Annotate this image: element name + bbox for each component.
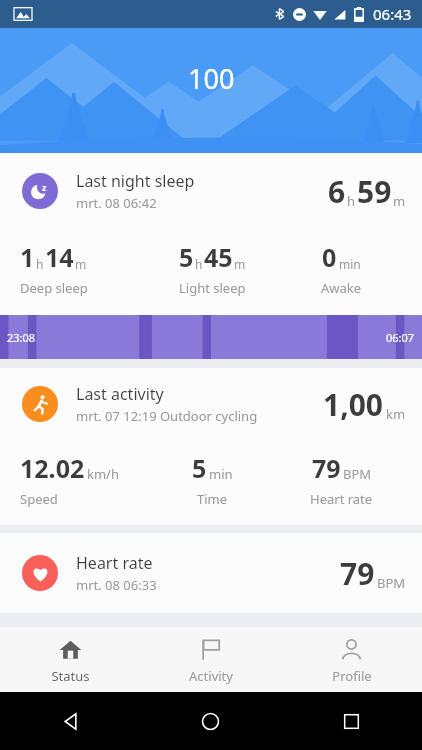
button[interactable]: Activity [140, 627, 281, 692]
staticText: Status [51, 667, 90, 685]
other: Activity [199, 638, 222, 661]
staticText: h [347, 192, 356, 210]
staticText: 1,00 [323, 384, 384, 425]
staticText: Heart rate [310, 490, 373, 508]
staticText: h [36, 256, 44, 272]
staticText: Light sleep [179, 279, 246, 297]
button[interactable]: Status [0, 627, 140, 692]
staticText: 6 [328, 171, 346, 212]
staticText: z [42, 181, 47, 193]
staticText: 23:08 [7, 330, 36, 345]
button[interactable]: Recents [281, 692, 422, 750]
staticText: mrt. 07 12:19 Outdoor cycling [76, 407, 258, 425]
button[interactable]: Profile [281, 627, 422, 692]
other: Profile [340, 638, 363, 661]
staticText: Speed [20, 490, 58, 508]
staticText: Profile [332, 667, 372, 685]
staticText: 06:07 [386, 330, 415, 345]
staticText: mrt. 08 06:42 [76, 194, 157, 212]
staticText: 12.02 [20, 451, 85, 485]
staticText: Deep sleep [20, 279, 88, 297]
staticText: Activity [189, 667, 233, 685]
staticText: m [75, 256, 87, 272]
button[interactable]: Home [140, 692, 281, 750]
staticText: h [195, 256, 203, 272]
button[interactable]: Heart rate [0, 533, 422, 613]
staticText: min [339, 256, 361, 272]
staticText: 14 [45, 240, 74, 274]
staticText: m [393, 192, 406, 210]
staticText: 59 [357, 171, 392, 212]
staticText: 79 [312, 451, 341, 485]
staticText: Awake [321, 279, 362, 297]
button[interactable]: 23:08 [0, 315, 422, 359]
other: Status [59, 638, 82, 661]
staticText: km [386, 405, 406, 423]
staticText: 06:43 [373, 4, 412, 24]
staticText: min [209, 465, 233, 483]
staticText: mrt. 08 06:33 [76, 576, 157, 594]
staticText: BPM [377, 574, 406, 592]
staticText: 1 [20, 240, 35, 274]
staticText: Last night sleep [76, 170, 195, 192]
staticText: 100 [188, 60, 235, 97]
staticText: 79 [340, 553, 375, 594]
staticText: 45 [204, 240, 233, 274]
staticText: m [234, 256, 246, 272]
button[interactable]: Back [0, 692, 140, 750]
staticText: Heart rate [76, 552, 153, 574]
staticText: 5 [179, 240, 194, 274]
staticText: km/h [87, 465, 119, 483]
button[interactable]: Last activity [0, 368, 422, 525]
staticText: BPM [343, 465, 372, 483]
staticText: Time [197, 490, 228, 508]
staticText: 0 [322, 240, 337, 274]
staticText: Last activity [76, 383, 164, 405]
staticText: 5 [192, 451, 207, 485]
button[interactable]: z [0, 153, 422, 315]
